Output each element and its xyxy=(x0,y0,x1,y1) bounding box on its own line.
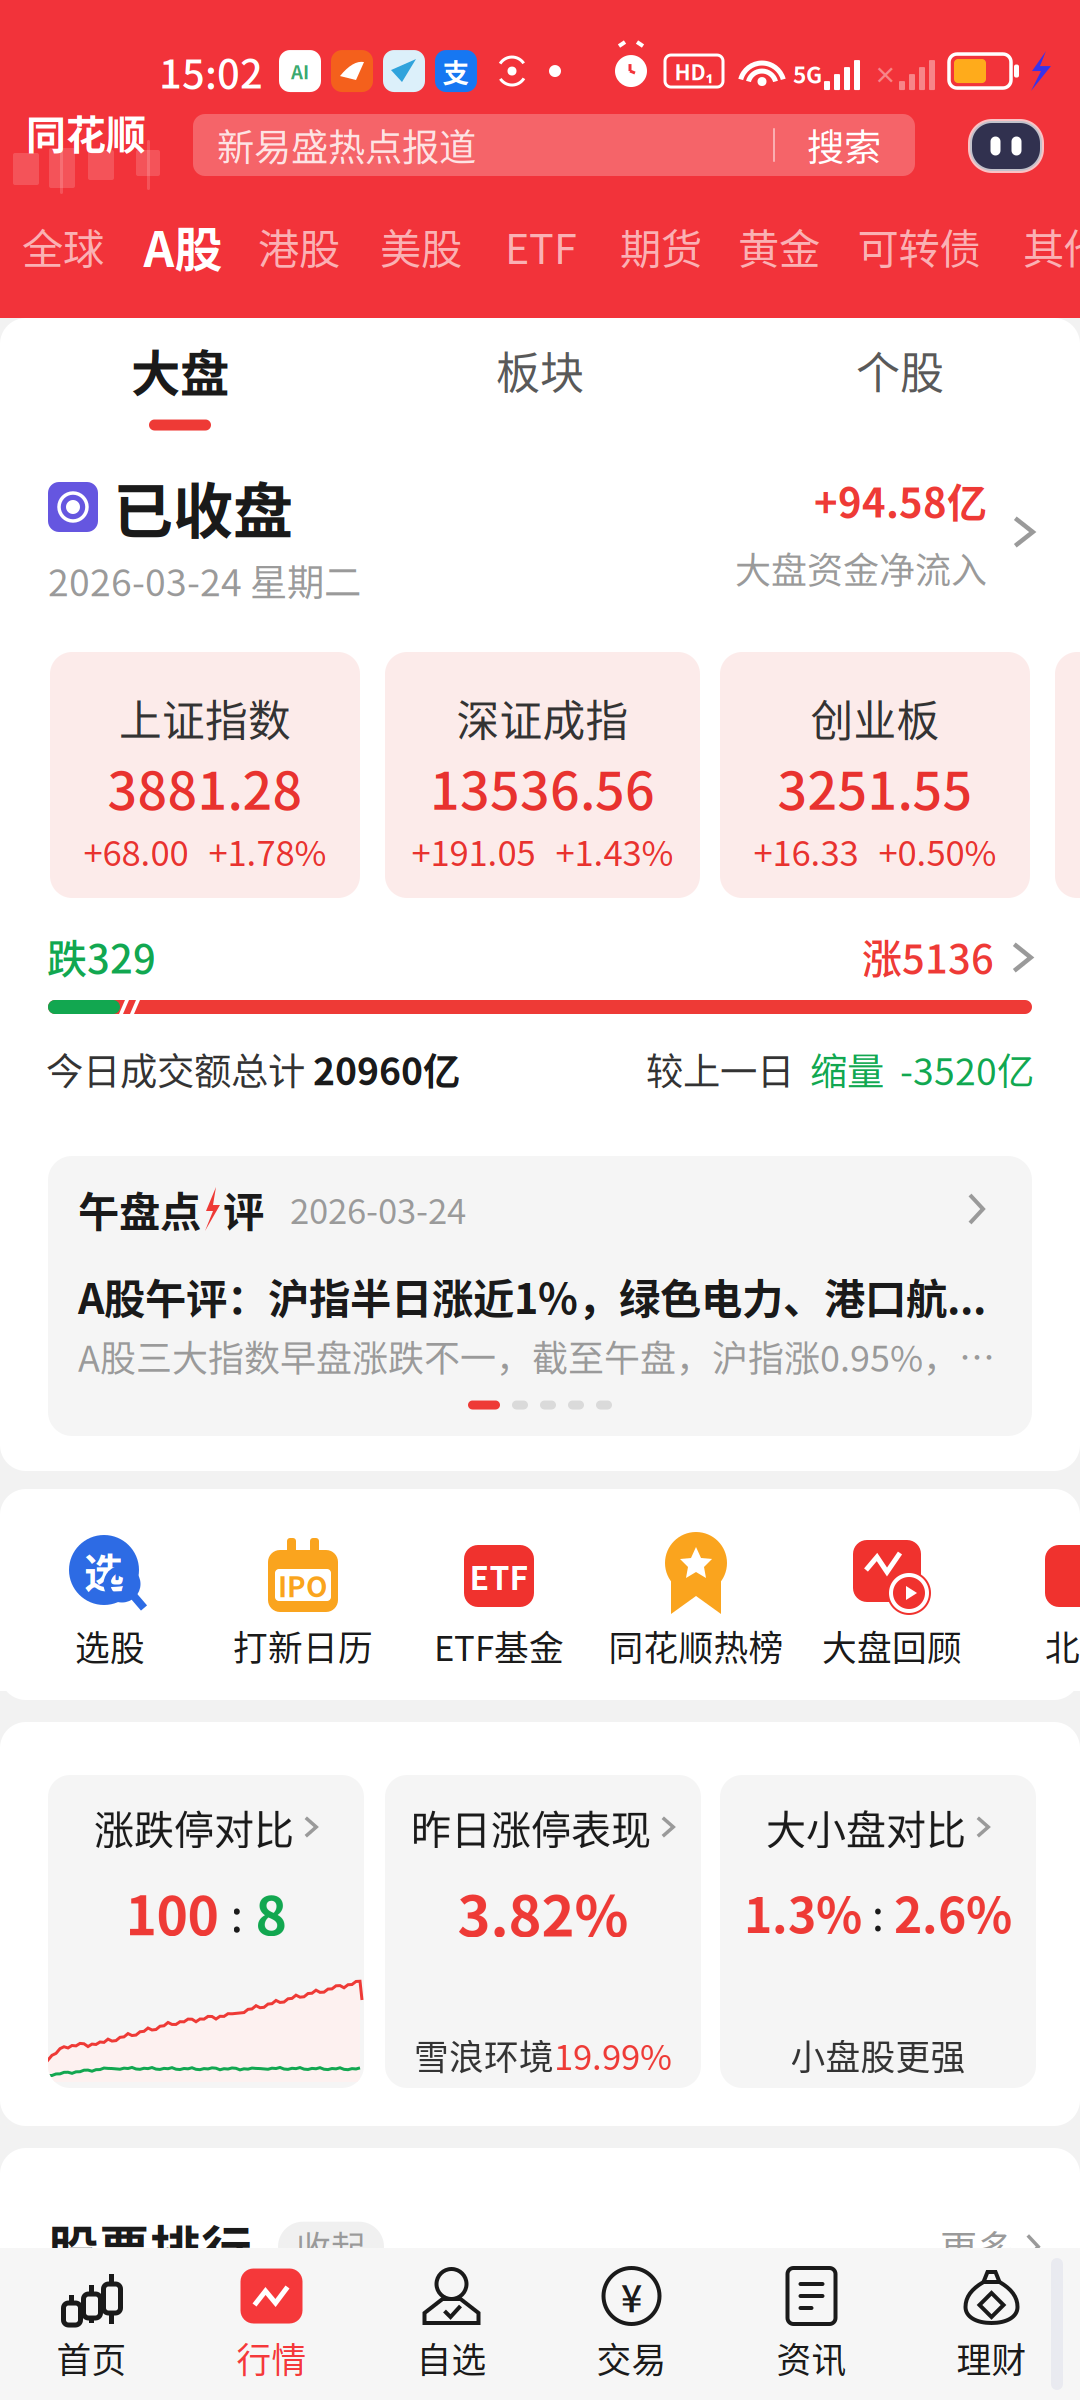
button[interactable]: 行情 xyxy=(181,2248,361,2400)
staticText: 美股 xyxy=(380,216,462,276)
staticText: 更多 xyxy=(940,2220,1014,2274)
staticText: 打新日历 xyxy=(233,1621,373,1671)
staticText: 搜索 xyxy=(807,118,881,172)
staticText: 3251.55 xyxy=(777,749,972,825)
staticText: 20960亿 xyxy=(313,1042,460,1096)
staticText: 3.82% xyxy=(457,1871,628,1953)
staticText: 其他 xyxy=(1023,216,1080,276)
button[interactable]: AI 助手 xyxy=(966,118,1046,174)
staticText: +1.43% xyxy=(555,826,673,876)
staticText: 全球 xyxy=(22,216,104,276)
button[interactable]: ETF xyxy=(491,194,591,298)
staticText: +0.50% xyxy=(878,826,996,876)
button[interactable]: 深证成指 xyxy=(385,652,700,898)
staticText: +1.78% xyxy=(208,826,326,876)
staticText: 评 xyxy=(223,1179,264,1239)
staticText: 100 xyxy=(125,1873,218,1951)
button[interactable]: 上证指数 xyxy=(50,652,360,898)
staticText: A股午评：沪指半日涨近1%，绿色电力、港口航... xyxy=(78,1266,986,1326)
staticText: 可转债 xyxy=(857,216,980,276)
staticText: +191.05 xyxy=(411,826,535,876)
staticText: 期货 xyxy=(620,216,702,276)
staticText: 首页 xyxy=(56,2333,126,2383)
button[interactable]: 资讯 xyxy=(721,2248,901,2400)
staticText: 股票排行 xyxy=(48,2210,252,2283)
button[interactable]: 同花顺 xyxy=(0,100,166,194)
button[interactable]: IPO xyxy=(205,1521,401,1681)
button[interactable]: 个股 xyxy=(720,327,1080,447)
button[interactable]: 美股 xyxy=(369,194,473,298)
staticText: 2.6% xyxy=(894,1877,1012,1947)
staticText: ETF xyxy=(505,216,577,276)
button[interactable]: 全球 xyxy=(13,194,113,298)
button[interactable]: A股 xyxy=(130,194,236,298)
staticText: AI xyxy=(291,57,309,84)
button[interactable]: ETF xyxy=(401,1521,597,1681)
staticText: 港股 xyxy=(258,216,340,276)
staticText: 收起 xyxy=(296,2222,366,2272)
staticText: 大盘回顾 xyxy=(822,1621,962,1671)
staticText: A股 xyxy=(143,211,222,281)
button[interactable]: 同花顺热榜 xyxy=(598,1521,794,1681)
staticText: ETF xyxy=(469,1553,528,1599)
staticText: +68.00 xyxy=(83,826,188,876)
staticText: × xyxy=(874,57,897,90)
button[interactable]: 涨跌停对比 xyxy=(48,1775,364,2088)
staticText: 资讯 xyxy=(776,2333,846,2383)
staticText: 支 xyxy=(442,52,469,90)
button[interactable]: 跌329 xyxy=(0,922,1080,980)
staticText: 深证成指 xyxy=(456,687,628,749)
staticText: 3881.28 xyxy=(107,749,302,825)
staticText: 2026-03-24 xyxy=(290,1184,466,1234)
staticText: ¥ xyxy=(621,2269,642,2323)
button[interactable]: 新易盛热点报道 xyxy=(193,114,915,176)
staticText: : xyxy=(872,1881,884,1943)
button[interactable]: 午盘点 xyxy=(48,1156,1032,1436)
staticText: 5G xyxy=(793,57,822,90)
button[interactable]: 选 xyxy=(12,1521,208,1681)
staticText: 13536.56 xyxy=(430,749,655,825)
staticText: 个股 xyxy=(856,338,944,402)
staticText: 板块 xyxy=(496,338,584,402)
button[interactable]: 理财 xyxy=(901,2248,1080,2400)
staticText: 大盘资金净流入 xyxy=(735,542,987,594)
staticText: ETF基金 xyxy=(434,1621,564,1671)
staticText: 8 xyxy=(255,1873,286,1951)
button[interactable]: 板块 xyxy=(360,327,720,447)
button[interactable]: 可转债 xyxy=(838,194,1000,298)
staticText: 大盘 xyxy=(131,334,229,406)
staticText: -3520亿 xyxy=(900,1042,1034,1096)
staticText: 1.3% xyxy=(744,1877,862,1947)
button[interactable]: 期货 xyxy=(609,194,713,298)
staticText: 大小盘对比 xyxy=(766,1798,966,1856)
staticText: 19.99% xyxy=(554,2030,672,2080)
button[interactable]: ¥ xyxy=(541,2248,721,2400)
button[interactable]: 港股 xyxy=(247,194,351,298)
staticText: 2026-03-24 星期二 xyxy=(48,553,361,607)
button[interactable]: 北交 xyxy=(982,1521,1080,1681)
staticText: 北交 xyxy=(1045,1621,1080,1671)
staticText: 上证指数 xyxy=(119,687,291,749)
staticText: 行情 xyxy=(236,2333,306,2383)
button[interactable]: 昨日涨停表现 xyxy=(385,1775,701,2088)
button[interactable]: 大小盘对比 xyxy=(720,1775,1036,2088)
button[interactable]: 首页 xyxy=(1,2248,181,2400)
button[interactable]: 大盘回顾 xyxy=(794,1521,990,1681)
staticText: 涨5136 xyxy=(862,927,994,985)
staticText: 选股 xyxy=(75,1621,145,1671)
staticText: 选 xyxy=(84,1541,124,1599)
button[interactable]: 已收盘 xyxy=(0,463,1080,613)
button[interactable]: 黄金 xyxy=(727,194,831,298)
button[interactable]: 大盘 xyxy=(0,327,360,447)
staticText: 昨日涨停表现 xyxy=(411,1798,651,1856)
staticText: 自选 xyxy=(416,2333,486,2383)
staticText: +16.33 xyxy=(753,826,858,876)
staticText: 理财 xyxy=(956,2333,1026,2383)
staticText: IPO xyxy=(278,1565,328,1605)
button[interactable]: 创业板 xyxy=(720,652,1030,898)
staticText: 交易 xyxy=(596,2333,666,2383)
staticText: : xyxy=(230,1879,243,1945)
staticText: A股三大指数早盘涨跌不一，截至午盘，沪指涨0.95%，… xyxy=(78,1330,995,1382)
button[interactable]: 自选 xyxy=(361,2248,541,2400)
staticText: 缩量 xyxy=(810,1042,884,1096)
